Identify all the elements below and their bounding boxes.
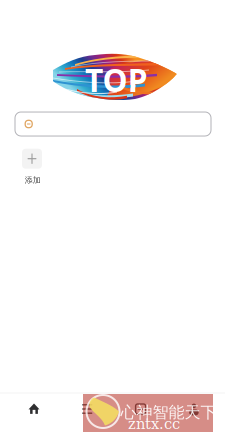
staticText: zntx.cc [128, 415, 180, 433]
staticText: 添加 [25, 175, 41, 185]
button[interactable]: List [61, 388, 114, 430]
button[interactable] [15, 112, 211, 136]
button[interactable]: Home [7, 388, 60, 430]
button[interactable]: Devices [114, 388, 167, 430]
staticText: TOP [77, 53, 156, 106]
button[interactable]: Profile [167, 388, 220, 430]
staticText: 心神智能天下 [120, 402, 216, 422]
button[interactable]: 添加 [18, 147, 46, 185]
